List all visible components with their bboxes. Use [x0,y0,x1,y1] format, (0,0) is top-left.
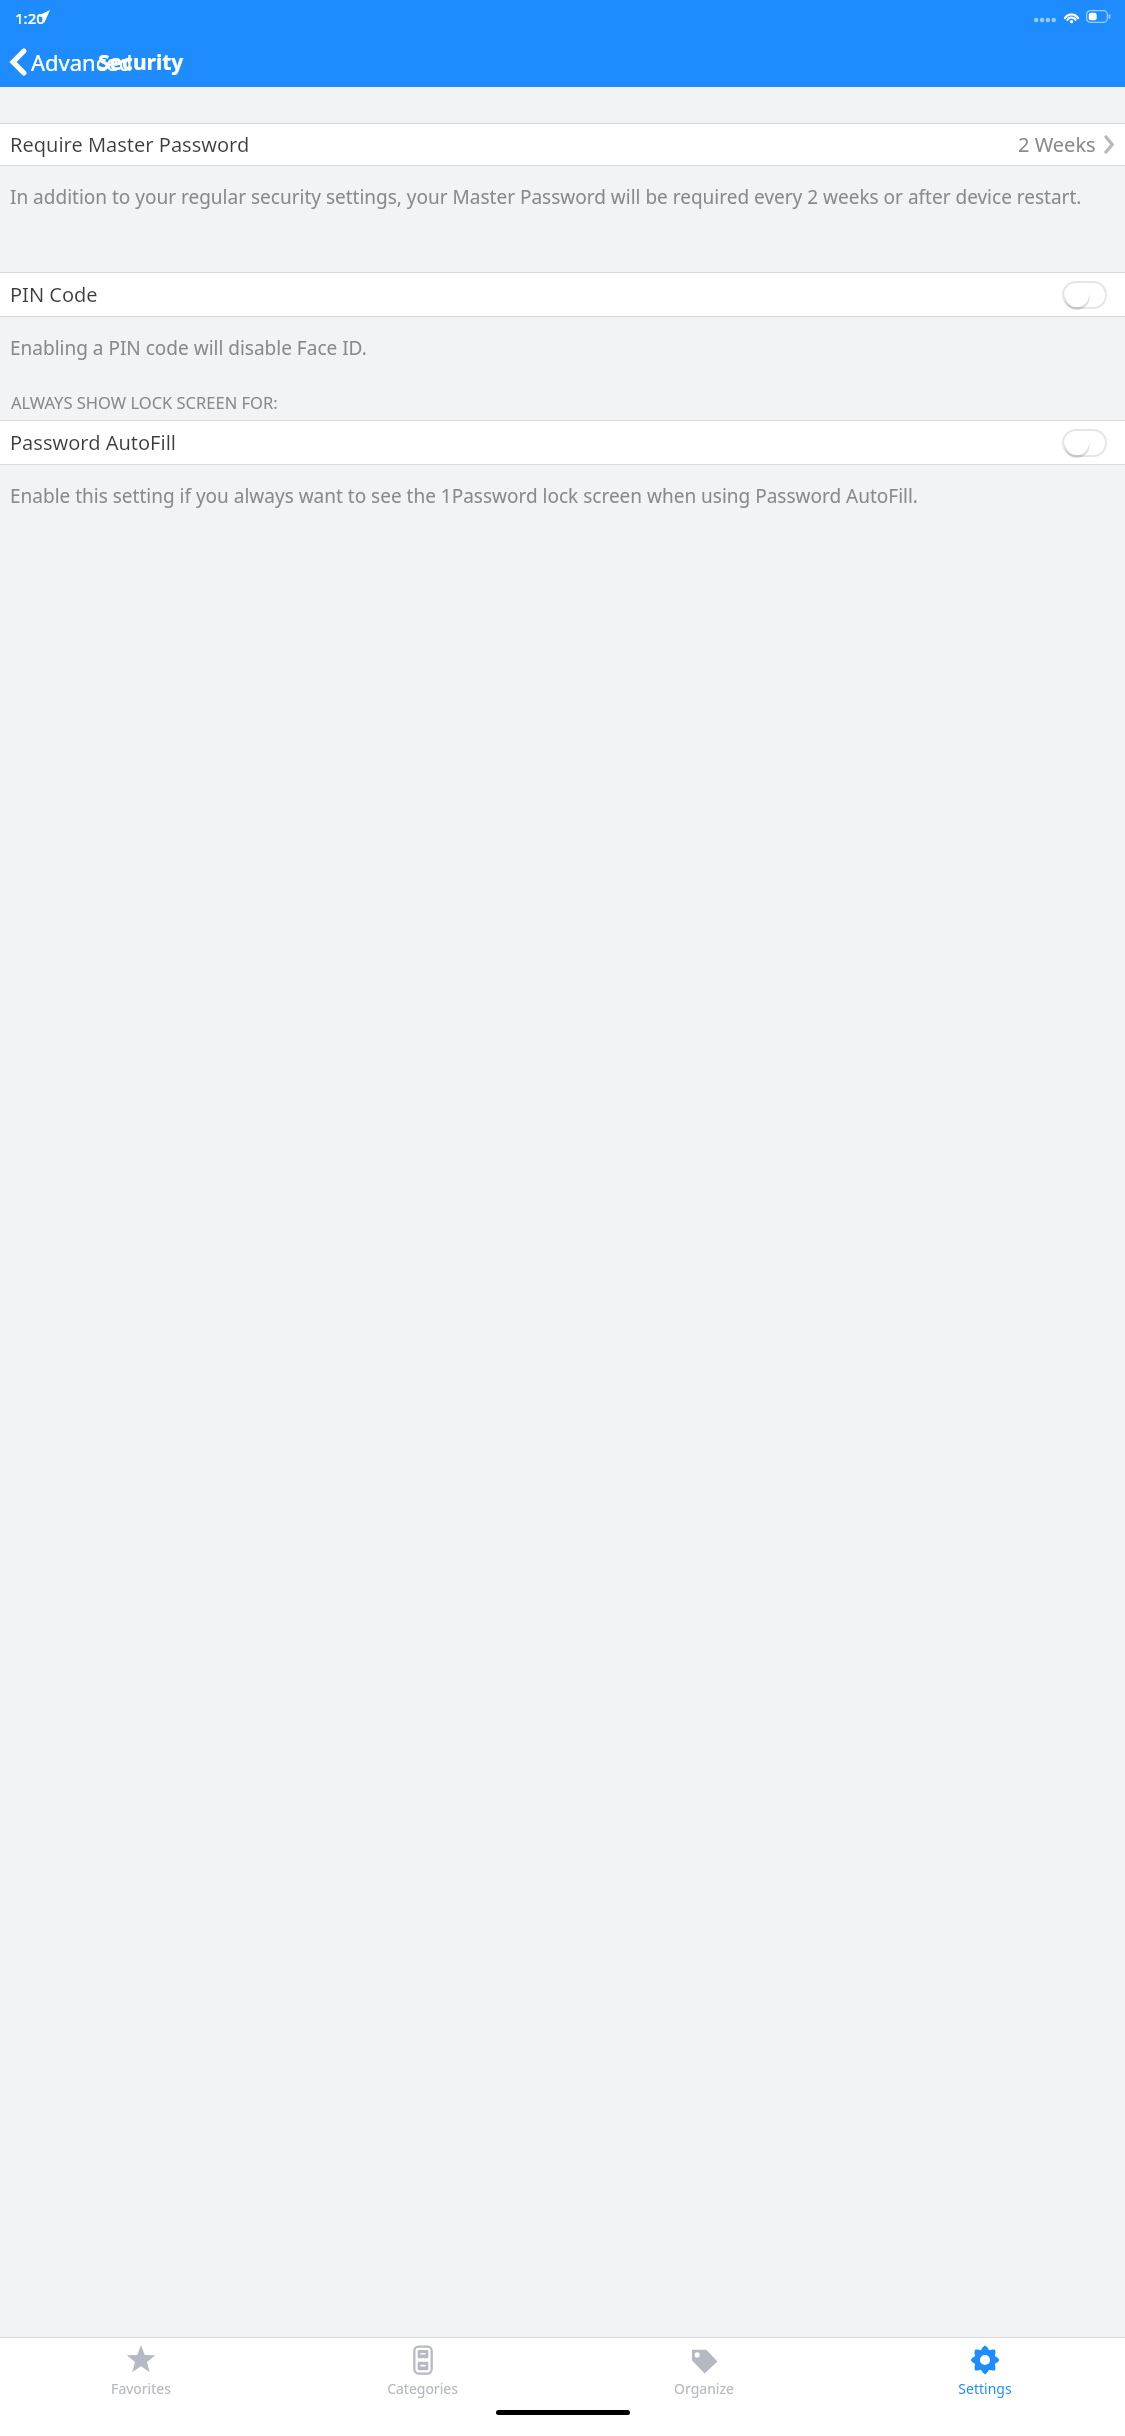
button[interactable]: Settings [844,2338,1125,2400]
staticText: Categories [387,2379,458,2398]
button[interactable]: Advanced [8,45,137,79]
staticText: Advanced [31,47,133,77]
button[interactable]: Require Master Password [0,124,1125,165]
staticText: ALWAYS SHOW LOCK SCREEN FOR: [11,391,278,413]
button[interactable]: Password AutoFill toggle, off [1062,429,1107,457]
staticText: Settings [958,2379,1012,2398]
staticText: 2 Weeks [1018,131,1096,158]
staticText: Security [98,48,184,77]
staticText: Organize [674,2379,734,2398]
button[interactable]: Categories [282,2338,563,2400]
staticText: PIN Code [10,281,98,308]
button[interactable]: Favorites [0,2338,282,2400]
staticText: 1:20 [15,8,45,28]
staticText: Enable this setting if you always want t… [10,483,1113,509]
staticText: Enabling a PIN code will disable Face ID… [10,335,1113,361]
button[interactable]: Organize [563,2338,844,2400]
staticText: Favorites [111,2379,171,2398]
staticText: Password AutoFill [10,429,176,456]
staticText: Require Master Password [10,131,250,158]
staticText: In addition to your regular security set… [10,184,1113,210]
button[interactable]: PIN Code toggle, off [1062,281,1107,309]
